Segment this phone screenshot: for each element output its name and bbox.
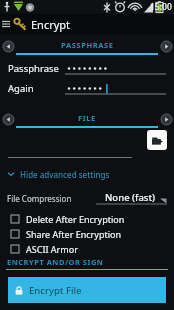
staticText: Again [8, 82, 65, 95]
button[interactable]: Encrypt File [8, 277, 166, 303]
button[interactable]: PASSPHRASE [16, 38, 158, 55]
button[interactable]: Share After Encryption [0, 226, 174, 241]
staticText: PASSPHRASE [61, 40, 114, 50]
button[interactable]: Passphrase [0, 60, 174, 77]
staticText: Encrypt [31, 17, 71, 32]
button[interactable]: Next tab [158, 38, 174, 55]
button[interactable]: Delete After Encryption [0, 211, 174, 226]
button[interactable]: Hide advanced settings [0, 167, 174, 181]
staticText: Encrypt File [29, 284, 82, 297]
button[interactable]: Previous tab [0, 111, 16, 128]
staticText: FILE [78, 113, 96, 123]
staticText: Hide advanced settings [20, 169, 110, 180]
button[interactable]: Previous tab [0, 38, 16, 55]
button[interactable]: Again [0, 80, 174, 97]
button[interactable]: Browse for file [147, 130, 167, 150]
button[interactable]: ASCII Armor [0, 241, 174, 256]
button[interactable]: File Compression [0, 190, 174, 207]
staticText: Share After Encryption [26, 228, 122, 240]
button[interactable]: Navigation drawer [0, 14, 12, 34]
button[interactable]: FILE [16, 111, 158, 128]
staticText: ENCRYPT AND/OR SIGN [7, 257, 104, 267]
staticText: None (fast) [105, 191, 156, 204]
staticText: Passphrase [8, 62, 65, 75]
staticText: Delete After Encryption [26, 213, 125, 225]
staticText: File Compression [7, 193, 72, 204]
button[interactable]: Next tab [158, 111, 174, 128]
staticText: 15:00 [150, 1, 172, 13]
staticText: ASCII Armor [26, 243, 78, 255]
